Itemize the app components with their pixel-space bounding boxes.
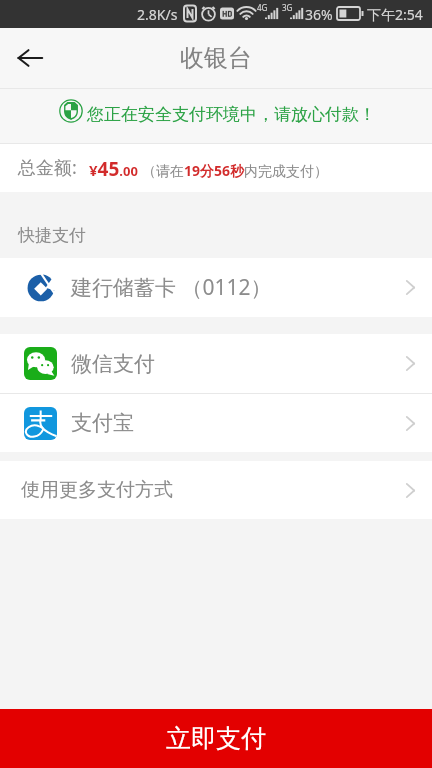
staticText: 36% [305,5,333,24]
button[interactable]: 立即支付 [0,709,432,768]
button[interactable]: 使用更多支付方式 [0,461,432,519]
staticText: 下午2:54 [367,5,423,24]
staticText: ¥45.00 [89,156,138,182]
staticText: 3G [282,2,293,13]
staticText: 立即支付 [166,723,266,754]
staticText: 总金额: [18,155,77,180]
staticText: 快捷支付 [18,225,86,246]
button[interactable]: 微信支付 [0,334,432,393]
staticText: （请在19分56秒内完成支付） [142,161,329,180]
staticText: 支付宝 [71,410,134,436]
staticText: 建行储蓄卡 （0112） [71,273,272,302]
staticText: 4G [257,2,268,13]
staticText: 收银台 [180,43,252,73]
button[interactable]: 建行储蓄卡 （0112） [0,258,432,317]
staticText: 微信支付 [71,351,155,377]
staticText: 2.8K/s [137,5,178,24]
button[interactable]: Back [0,28,60,88]
button[interactable]: 支付宝 [0,394,432,452]
staticText: 使用更多支付方式 [21,478,173,502]
staticText: 您正在安全支付环境中，请放心付款！ [87,104,376,125]
